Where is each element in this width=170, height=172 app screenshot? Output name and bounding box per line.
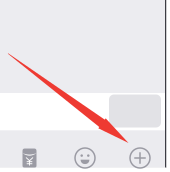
button[interactable]: Emoji xyxy=(57,139,112,172)
button[interactable]: More xyxy=(112,139,167,172)
button[interactable]: Red packet xyxy=(2,139,57,172)
